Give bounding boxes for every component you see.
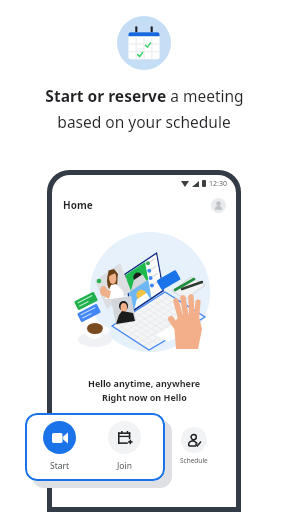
staticText: based on your schedule — [57, 111, 231, 132]
button[interactable]: Start — [43, 421, 76, 472]
button[interactable]: Account — [211, 198, 226, 213]
staticText: Join — [117, 460, 132, 472]
staticText: 12:30 — [209, 179, 227, 189]
button[interactable]: Join — [108, 421, 141, 472]
staticText: Right now on Hello — [102, 391, 187, 403]
button[interactable]: Schedule — [180, 427, 208, 465]
staticText: Home — [63, 198, 93, 212]
staticText: Start or reserve a meeting — [45, 85, 244, 106]
staticText: Hello anytime, anywhere — [88, 377, 201, 389]
staticText: Schedule — [180, 456, 208, 465]
staticText: Start — [50, 460, 70, 472]
